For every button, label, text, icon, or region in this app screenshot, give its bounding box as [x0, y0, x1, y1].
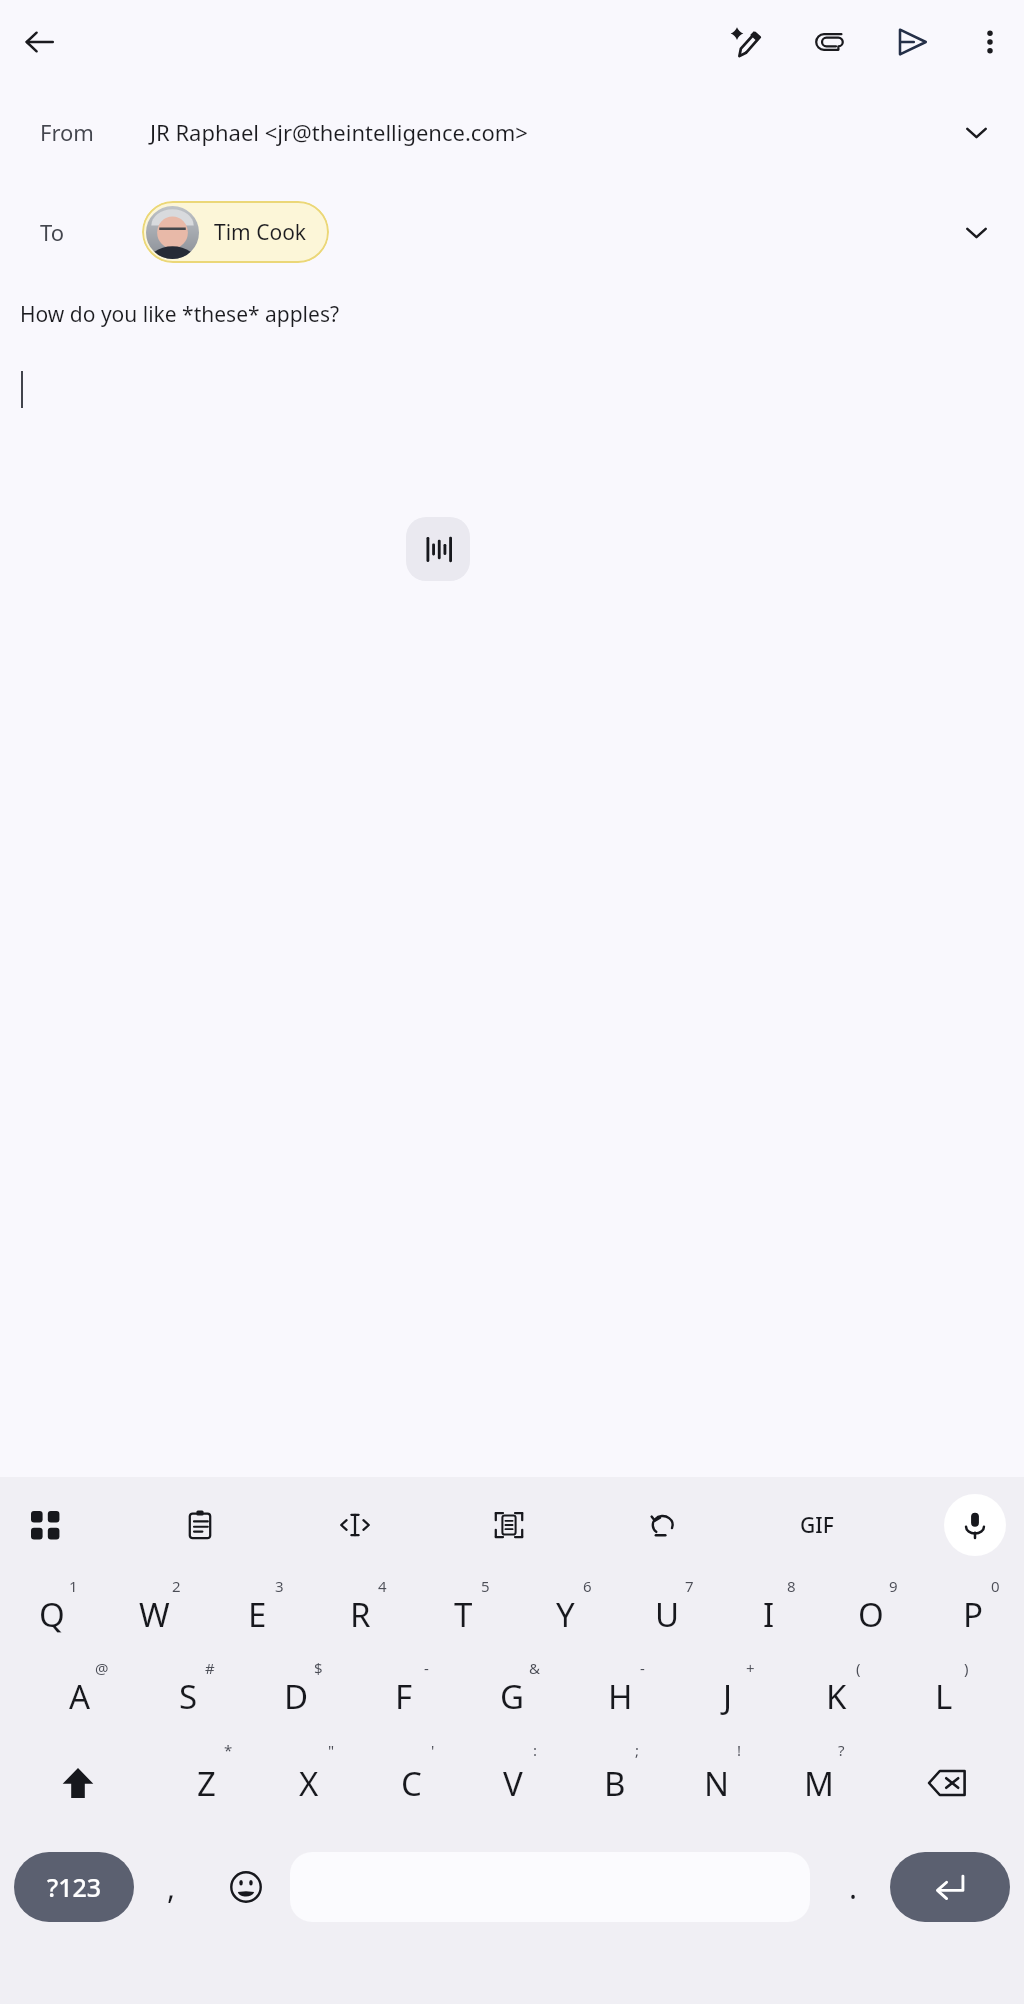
staticText: 2	[172, 1576, 181, 1596]
button[interactable]: .	[816, 1852, 890, 1922]
staticText: '	[431, 1740, 435, 1760]
staticText: 1	[69, 1576, 78, 1596]
button[interactable]: GIF	[790, 1498, 844, 1552]
button[interactable]: Enter	[890, 1852, 1010, 1922]
button[interactable]: Text editing	[328, 1498, 382, 1552]
button[interactable]: O	[820, 1573, 922, 1655]
staticText: 8	[787, 1576, 796, 1596]
staticText: 6	[583, 1576, 592, 1596]
button[interactable]: From	[0, 84, 1024, 180]
staticText: GIF	[800, 1511, 834, 1540]
button[interactable]: V	[462, 1737, 564, 1829]
button[interactable]: T	[412, 1573, 514, 1655]
staticText: F	[395, 1674, 413, 1719]
staticText: P	[963, 1592, 983, 1637]
button[interactable]: M	[768, 1737, 870, 1829]
staticText: K	[826, 1674, 847, 1719]
staticText: B	[604, 1761, 626, 1806]
button[interactable]: Select all	[482, 1498, 536, 1552]
staticText: -	[424, 1658, 429, 1678]
staticText: !	[737, 1740, 742, 1760]
button[interactable]: Y	[514, 1573, 616, 1655]
staticText: H	[608, 1674, 633, 1719]
staticText: How do you like *these* apples?	[20, 300, 340, 329]
button[interactable]: S	[134, 1655, 242, 1737]
button[interactable]: F	[350, 1655, 458, 1737]
staticText: 0	[991, 1576, 1000, 1596]
button[interactable]: W	[103, 1573, 206, 1655]
staticText: X	[299, 1761, 319, 1806]
staticText: $	[314, 1658, 323, 1678]
button[interactable]: More options	[964, 16, 1016, 68]
staticText: A	[69, 1674, 91, 1719]
staticText: 3	[275, 1576, 284, 1596]
staticText: ,	[167, 1867, 176, 1908]
staticText: ?	[838, 1740, 845, 1760]
staticText: JR Raphael <jr@theintelligence.com>	[150, 117, 528, 147]
staticText: 9	[889, 1576, 898, 1596]
button[interactable]: U	[616, 1573, 718, 1655]
button[interactable]: D	[242, 1655, 350, 1737]
button[interactable]: Toolbar	[18, 1498, 72, 1552]
button[interactable]: Backspace	[870, 1737, 1024, 1829]
button[interactable]: G	[458, 1655, 566, 1737]
staticText: Q	[39, 1592, 65, 1637]
staticText: D	[284, 1674, 309, 1719]
button[interactable]: Z	[155, 1737, 258, 1829]
button[interactable]: A	[26, 1655, 134, 1737]
button[interactable]: Attach file	[804, 16, 856, 68]
button[interactable]: K	[782, 1655, 890, 1737]
button[interactable]: Q	[0, 1573, 103, 1655]
button[interactable]: L	[890, 1655, 998, 1737]
staticText: N	[704, 1761, 730, 1806]
staticText: 4	[378, 1576, 387, 1596]
button[interactable]: Expand recipients	[954, 210, 998, 254]
staticText: .	[849, 1867, 858, 1908]
button[interactable]: Voice input	[406, 517, 470, 581]
button[interactable]: Undo	[636, 1498, 690, 1552]
button[interactable]: C	[360, 1737, 462, 1829]
staticText: W	[139, 1592, 170, 1637]
button[interactable]: H	[566, 1655, 674, 1737]
staticText: E	[248, 1592, 267, 1637]
button[interactable]: X	[258, 1737, 360, 1829]
staticText: @	[95, 1658, 109, 1678]
button[interactable]: Send	[886, 16, 938, 68]
button[interactable]: Back	[11, 14, 67, 70]
staticText: I	[763, 1592, 775, 1637]
staticText: #	[205, 1658, 215, 1678]
staticText: 5	[481, 1576, 490, 1596]
button[interactable]: ,	[134, 1852, 208, 1922]
button[interactable]: B	[564, 1737, 666, 1829]
button[interactable]: To	[0, 180, 1024, 284]
staticText: Tim Cook	[214, 218, 307, 247]
staticText: V	[503, 1761, 523, 1806]
button[interactable]: R	[309, 1573, 412, 1655]
button[interactable]: ?123	[14, 1852, 134, 1922]
staticText: G	[500, 1674, 525, 1719]
button[interactable]: Shift	[0, 1737, 155, 1829]
button[interactable]: Tim Cook	[146, 201, 307, 263]
staticText: U	[655, 1592, 680, 1637]
staticText: *	[224, 1740, 233, 1760]
staticText: (	[856, 1658, 861, 1678]
staticText: J	[723, 1674, 733, 1719]
staticText: S	[179, 1674, 198, 1719]
button[interactable]: I	[718, 1573, 820, 1655]
button[interactable]: E	[206, 1573, 309, 1655]
button[interactable]: J	[674, 1655, 782, 1737]
staticText: Z	[197, 1761, 216, 1806]
button[interactable]: Write with AI	[720, 16, 772, 68]
button[interactable]: P	[922, 1573, 1024, 1655]
button[interactable]: N	[666, 1737, 768, 1829]
staticText: M	[804, 1761, 834, 1806]
staticText: &	[529, 1658, 540, 1678]
button[interactable]: Voice typing	[944, 1494, 1006, 1556]
button[interactable]: Expand from	[954, 110, 998, 154]
button[interactable]: Clipboard	[173, 1498, 227, 1552]
staticText: From	[40, 117, 150, 147]
button[interactable]: Emoji	[208, 1852, 284, 1922]
staticText: +	[746, 1658, 755, 1678]
staticText: C	[401, 1761, 422, 1806]
